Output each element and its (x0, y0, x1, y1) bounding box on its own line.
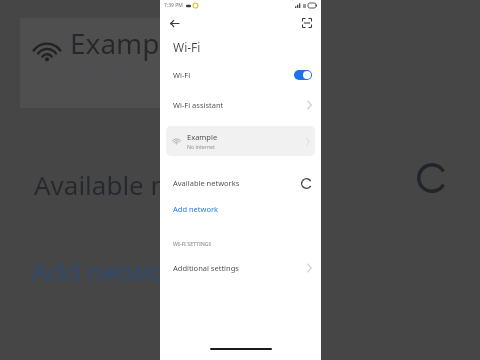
staticText: Wi-Fi (173, 70, 191, 80)
button[interactable]: Example (166, 126, 315, 156)
staticText: Wi-Fi assistant (173, 100, 224, 110)
button[interactable]: Wi-Fi toggle (294, 70, 312, 80)
button[interactable]: Wi-Fi assistant (160, 90, 321, 120)
staticText: Add network (32, 253, 189, 288)
staticText: Wi-Fi (173, 39, 201, 55)
staticText: Available networks (173, 178, 240, 188)
button[interactable]: Scan QR code (299, 15, 315, 31)
staticText: 7:39 PM (164, 2, 183, 9)
button[interactable]: Additional settings (160, 256, 321, 280)
staticText: Available ne (34, 167, 182, 202)
staticText: Add network (173, 204, 219, 214)
staticText: WI-FI SETTINGS (173, 240, 212, 247)
staticText: Example (187, 132, 218, 142)
staticText: No internet (187, 143, 215, 150)
button[interactable]: Wi-Fi (160, 60, 321, 90)
staticText: Exampl (70, 24, 167, 62)
button[interactable]: Back (166, 15, 182, 31)
button[interactable]: Add network (160, 196, 321, 222)
staticText: No interne (73, 57, 164, 82)
button[interactable]: Available networks (160, 170, 321, 196)
staticText: Additional settings (173, 263, 239, 273)
